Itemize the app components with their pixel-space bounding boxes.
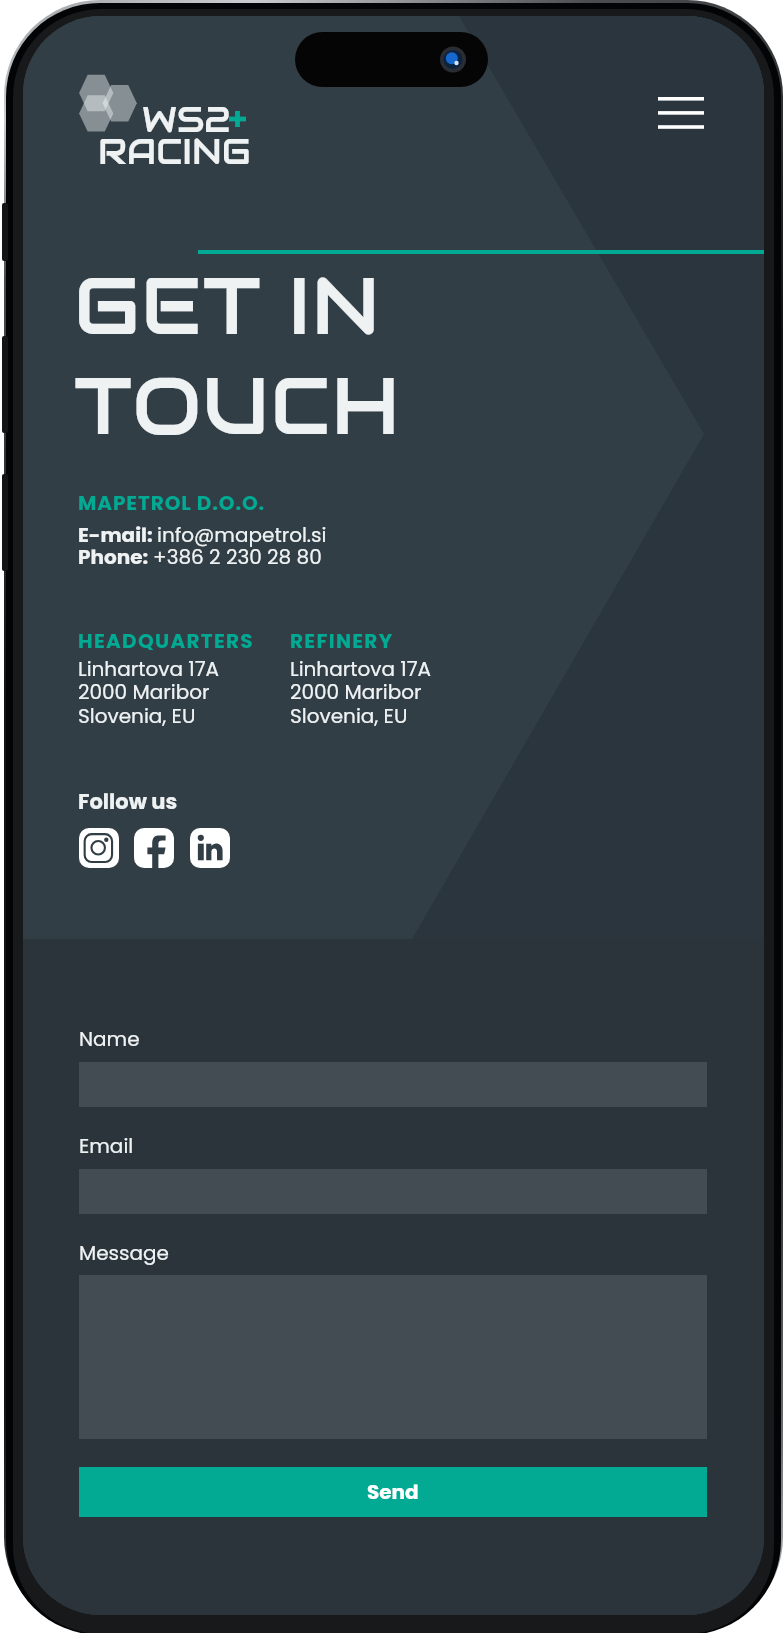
staticText: Phone: bbox=[78, 543, 153, 571]
staticText: Linhartova 17A 2000 Maribor Slovenia, EU bbox=[78, 655, 220, 730]
button[interactable]: Instagram bbox=[79, 828, 119, 868]
staticText: Message bbox=[79, 1239, 169, 1267]
button[interactable] bbox=[77, 72, 272, 184]
button[interactable]: LinkedIn bbox=[190, 828, 230, 868]
staticText: info@mapetrol.si bbox=[157, 521, 327, 549]
staticText: Follow us bbox=[78, 787, 178, 816]
staticText: Linhartova 17A 2000 Maribor Slovenia, EU bbox=[290, 655, 432, 730]
staticText: Email bbox=[79, 1132, 134, 1160]
staticText: TOUCH bbox=[74, 355, 401, 457]
staticText: REFINERY bbox=[290, 627, 394, 655]
button[interactable]: Send bbox=[79, 1467, 707, 1517]
staticText: Name bbox=[79, 1025, 140, 1053]
staticText: MAPETROL D.O.O. bbox=[78, 489, 266, 517]
staticText: HEADQUARTERS bbox=[78, 627, 254, 655]
staticText: GET IN bbox=[74, 255, 381, 357]
staticText: +386 2 230 28 80 bbox=[153, 543, 322, 571]
staticText: WS2 bbox=[142, 97, 231, 142]
staticText: RACING bbox=[98, 129, 251, 174]
button[interactable]: Open navigation menu bbox=[638, 78, 724, 148]
staticText: E-mail: bbox=[78, 521, 157, 549]
staticText: Send bbox=[367, 1478, 419, 1506]
button[interactable]: Facebook bbox=[134, 828, 174, 868]
